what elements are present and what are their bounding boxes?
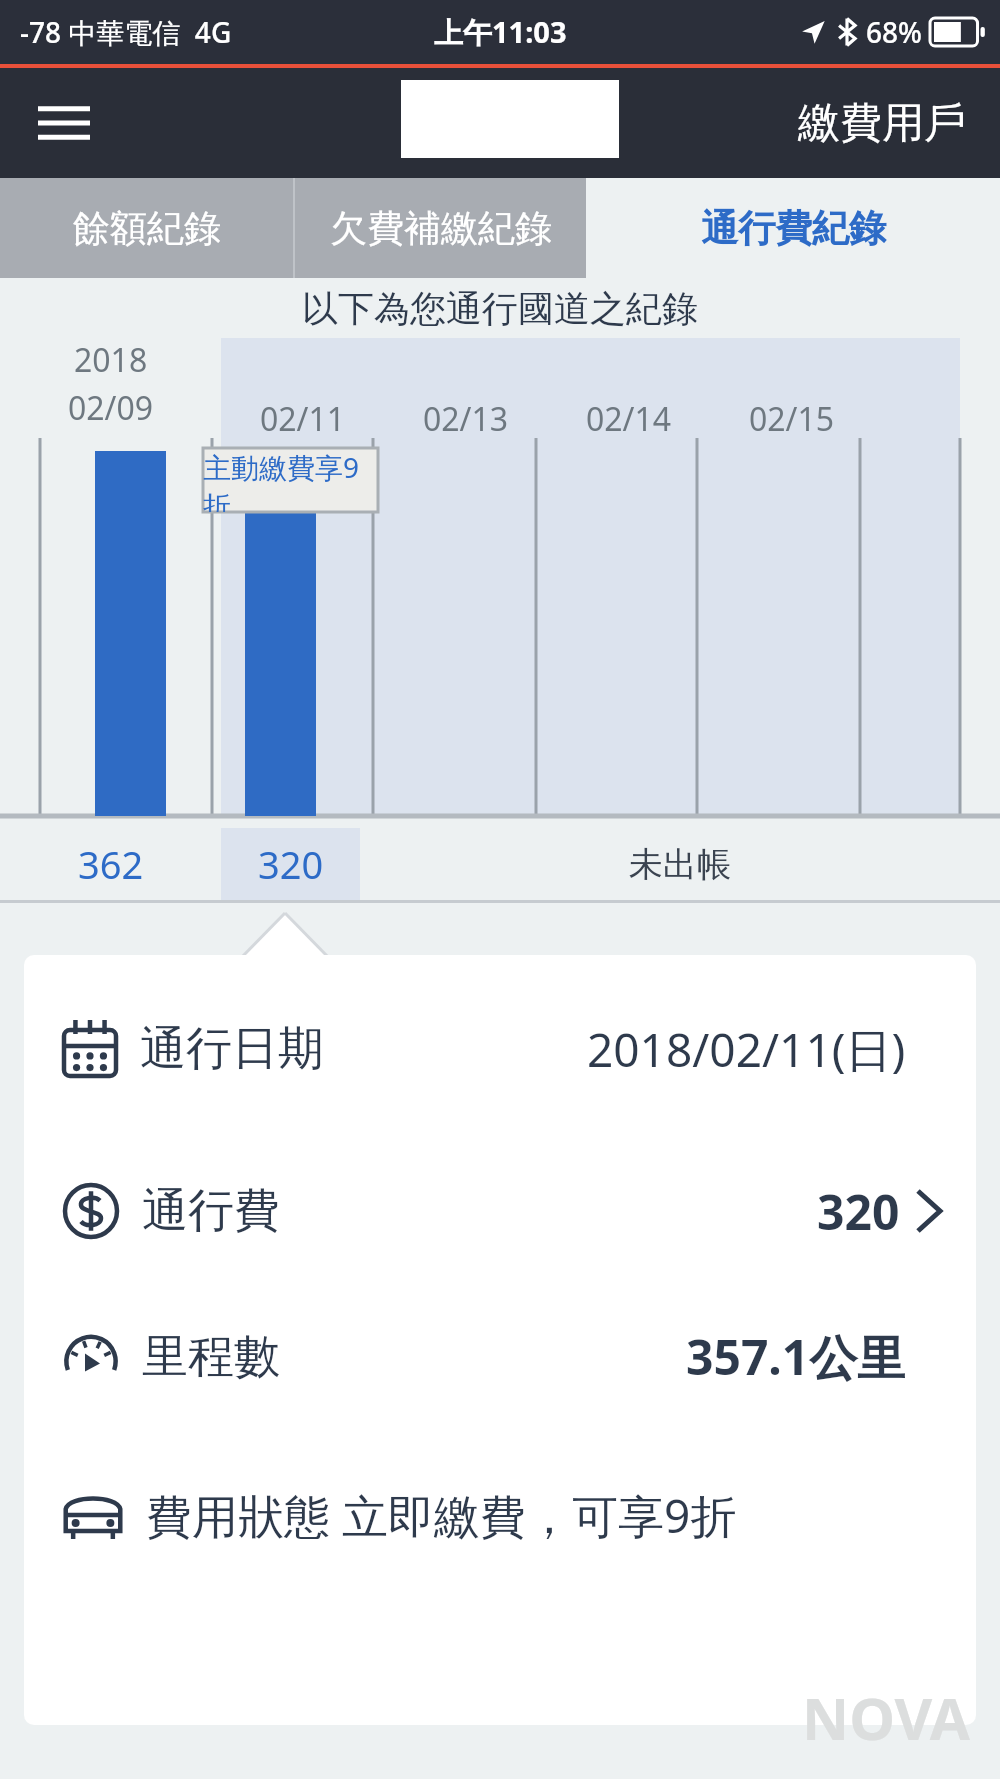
staticText: 02/15 <box>749 397 835 441</box>
button[interactable]: 欠費補繳紀錄 <box>295 178 586 278</box>
staticText: 通行日期 <box>140 1020 324 1078</box>
staticText: -78 中華電信 4G <box>20 13 232 51</box>
staticText: 68% <box>866 13 922 51</box>
staticText: 02/09 <box>68 386 154 430</box>
button[interactable]: 餘額紀錄 <box>0 178 293 278</box>
staticText: NOVA <box>802 1678 970 1757</box>
staticText: 320 <box>817 1179 900 1244</box>
staticText: 里程數 <box>142 1328 280 1386</box>
staticText: 357.1公里 <box>686 1324 906 1390</box>
staticText: 2018/02/11(日) <box>587 1018 906 1081</box>
button[interactable]: 里程數 <box>24 1315 976 1399</box>
button[interactable]: 費用狀態 立即繳費，可享9折 <box>24 1473 976 1557</box>
staticText: 02/14 <box>586 397 672 441</box>
staticText: 02/13 <box>423 397 509 441</box>
staticText: 以下為您通行國道之紀錄 <box>302 286 698 331</box>
staticText: 主動繳費享9折 <box>203 448 378 512</box>
staticText: 02/11 <box>260 397 346 441</box>
staticText: 費用狀態 立即繳費，可享9折 <box>146 1484 737 1547</box>
button[interactable]: 通行日期 <box>24 1007 976 1091</box>
button[interactable]: 繳費用戶 <box>798 97 966 150</box>
staticText: 通行費紀錄 <box>701 205 886 252</box>
button[interactable]: 通行費紀錄 <box>586 178 1000 278</box>
staticText: 上午11:03 <box>434 12 567 52</box>
staticText: 320 <box>258 838 324 890</box>
button[interactable]: Menu <box>34 93 94 153</box>
staticText: 362 <box>78 838 144 890</box>
staticText: 欠費補繳紀錄 <box>330 205 552 252</box>
staticText: 2018 <box>74 338 148 382</box>
button[interactable]: 通行費 <box>24 1169 976 1253</box>
staticText: 通行費 <box>142 1182 280 1240</box>
staticText: 未出帳 <box>629 843 731 886</box>
button[interactable]: 主動繳費享9折 <box>203 448 378 512</box>
staticText: 餘額紀錄 <box>73 205 221 252</box>
